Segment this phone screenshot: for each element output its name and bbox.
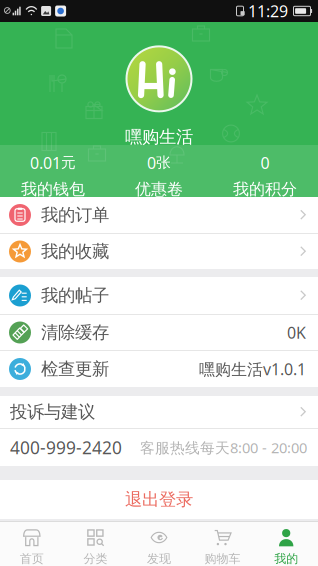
button[interactable]: 我的收藏 <box>0 234 318 269</box>
staticText: 客服热线每天8:00 - 20:00 <box>140 438 307 457</box>
staticText: 我的订单 <box>41 204 109 226</box>
button[interactable]: 我的帖子 <box>0 277 318 314</box>
staticText: 我的收藏 <box>41 241 109 262</box>
button[interactable]: 400-999-2420 <box>0 429 318 466</box>
staticText: 投诉与建议 <box>10 401 95 423</box>
button[interactable]: 发现 <box>127 521 191 566</box>
staticText: 张 <box>156 154 171 172</box>
staticText: 清除缓存 <box>41 322 109 343</box>
button[interactable]: 投诉与建议 <box>0 396 318 428</box>
staticText: 退出登录 <box>125 489 193 510</box>
button[interactable]: 分类 <box>64 521 127 566</box>
staticText: 400-999-2420 <box>10 436 122 459</box>
staticText: 我的积分 <box>233 179 297 199</box>
staticText: 0.01 <box>30 152 61 173</box>
staticText: 嘿购生活v1.0.1 <box>199 358 306 380</box>
staticText: 0K <box>287 322 306 343</box>
button[interactable]: 退出登录 <box>0 480 318 519</box>
button[interactable]: 首页 <box>0 521 64 566</box>
staticText: 0 <box>260 152 269 173</box>
button[interactable]: 购物车 <box>191 521 254 566</box>
button[interactable]: 检查更新 <box>0 351 318 387</box>
staticText: 优惠卷 <box>135 179 183 199</box>
button[interactable]: 我的订单 <box>0 197 318 233</box>
staticText: 检查更新 <box>41 358 109 380</box>
staticText: 首页 <box>20 551 44 566</box>
button[interactable]: 清除缓存 <box>0 315 318 350</box>
button[interactable]: 我的 <box>254 521 318 566</box>
staticText: 11:29 <box>248 0 288 22</box>
staticText: 购物车 <box>205 551 241 566</box>
staticText: 元 <box>61 154 76 172</box>
staticText: 我的帖子 <box>41 285 109 306</box>
button[interactable]: 0.01 <box>0 145 106 197</box>
button[interactable]: 0 <box>106 145 212 197</box>
staticText: 0 <box>147 152 156 173</box>
staticText: 嘿购生活 <box>125 126 193 148</box>
staticText: 发现 <box>147 551 171 566</box>
button[interactable]: 0 <box>212 145 318 197</box>
staticText: 分类 <box>83 551 107 566</box>
staticText: 我的 <box>274 551 298 566</box>
staticText: 我的钱包 <box>21 179 85 199</box>
